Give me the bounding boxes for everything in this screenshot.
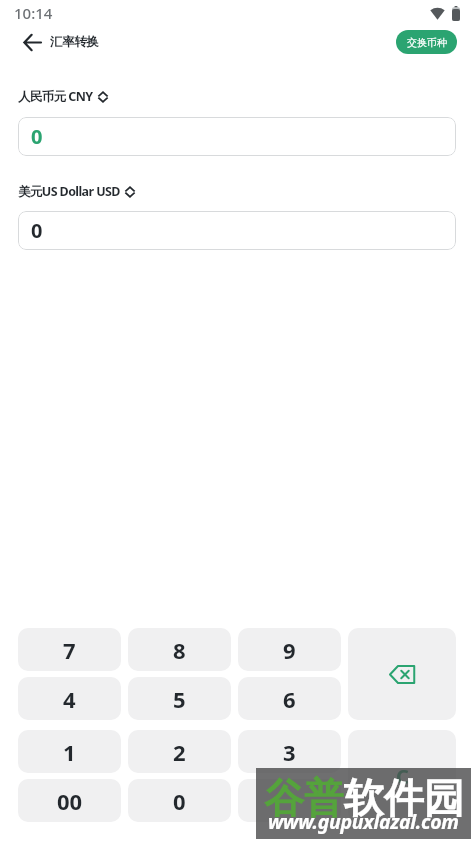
- staticText: www.gupuxlazal.com: [268, 808, 459, 835]
- staticText: 软件园: [344, 773, 464, 823]
- button[interactable]: 00: [18, 779, 121, 822]
- staticText: 00: [57, 786, 83, 816]
- staticText: 1: [63, 737, 76, 767]
- button[interactable]: 美元US Dollar USD: [18, 183, 135, 200]
- staticText: 7: [63, 635, 76, 665]
- button[interactable]: [348, 628, 456, 720]
- staticText: 美元US Dollar USD: [18, 183, 120, 200]
- button[interactable]: 0: [128, 779, 231, 822]
- staticText: 9: [283, 635, 296, 665]
- staticText: 0: [31, 217, 43, 244]
- button[interactable]: 5: [128, 677, 231, 720]
- staticText: 0: [173, 786, 186, 816]
- button[interactable]: 0: [18, 117, 456, 156]
- button[interactable]: 9: [238, 628, 341, 671]
- button[interactable]: 2: [128, 730, 231, 773]
- button[interactable]: 3: [238, 730, 341, 773]
- button[interactable]: [238, 779, 341, 822]
- button[interactable]: [20, 30, 44, 54]
- staticText: 10:14: [14, 3, 53, 23]
- staticText: 8: [173, 635, 186, 665]
- staticText: 谷普: [264, 773, 344, 823]
- button[interactable]: 7: [18, 628, 121, 671]
- staticText: 2: [173, 737, 186, 767]
- staticText: 汇率转换: [50, 34, 99, 50]
- staticText: 4: [63, 684, 76, 714]
- button[interactable]: 4: [18, 677, 121, 720]
- staticText: 交换币种: [407, 36, 447, 49]
- button[interactable]: 6: [238, 677, 341, 720]
- staticText: 6: [283, 684, 296, 714]
- staticText: 5: [173, 684, 186, 714]
- button[interactable]: C: [348, 730, 456, 822]
- staticText: C: [396, 763, 409, 790]
- button[interactable]: 交换币种: [396, 30, 457, 54]
- button[interactable]: 1: [18, 730, 121, 773]
- button[interactable]: 0: [18, 211, 456, 250]
- button[interactable]: 人民币元 CNY: [18, 88, 108, 105]
- staticText: 0: [31, 123, 43, 150]
- staticText: 3: [283, 737, 296, 767]
- staticText: 人民币元 CNY: [18, 88, 93, 105]
- button[interactable]: 8: [128, 628, 231, 671]
